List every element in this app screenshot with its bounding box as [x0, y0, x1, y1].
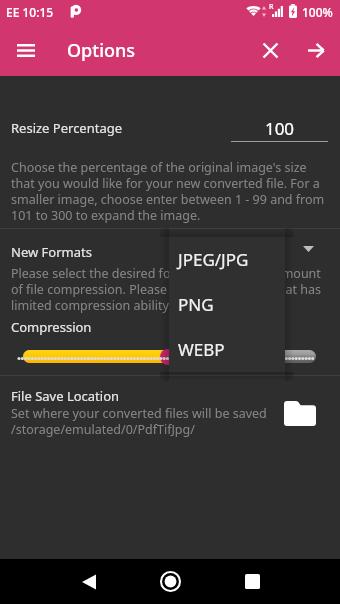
staticText: WEBP — [178, 338, 225, 361]
staticText: File Save Location — [11, 387, 120, 405]
staticText: 100% — [302, 4, 333, 20]
button[interactable]: Compression level — [0, 344, 340, 368]
staticText: 100 — [231, 117, 328, 140]
button[interactable]: Home — [148, 559, 193, 604]
staticText: Please select the desired format and des… — [11, 265, 322, 314]
button[interactable]: PNG — [169, 282, 285, 327]
staticText: Choose the percentage of the original im… — [11, 159, 329, 224]
staticText: Options — [67, 38, 136, 63]
button[interactable] — [0, 100, 340, 152]
button[interactable]: Next — [293, 27, 339, 73]
button[interactable]: Close — [247, 27, 293, 73]
staticText: PNG — [178, 293, 214, 316]
button[interactable]: Back — [66, 559, 111, 604]
button[interactable]: Recent apps — [230, 559, 275, 604]
staticText: New Formats — [11, 243, 92, 261]
staticText: Set where your converted files will be s… — [11, 405, 267, 438]
staticText: EE 10:15 — [6, 4, 54, 20]
staticText: R — [269, 2, 274, 12]
button[interactable]: JPEG/JPG — [169, 237, 285, 282]
button[interactable] — [0, 380, 340, 442]
staticText: Compression — [11, 318, 92, 336]
button[interactable]: Choose folder — [278, 395, 321, 431]
button[interactable]: WEBP — [169, 327, 285, 372]
button[interactable]: Expand format list — [293, 234, 323, 264]
button[interactable] — [0, 232, 340, 314]
staticText: JPEG/JPG — [178, 248, 249, 271]
button[interactable]: Open navigation menu — [0, 24, 52, 76]
staticText: Resize Percentage — [11, 119, 123, 137]
